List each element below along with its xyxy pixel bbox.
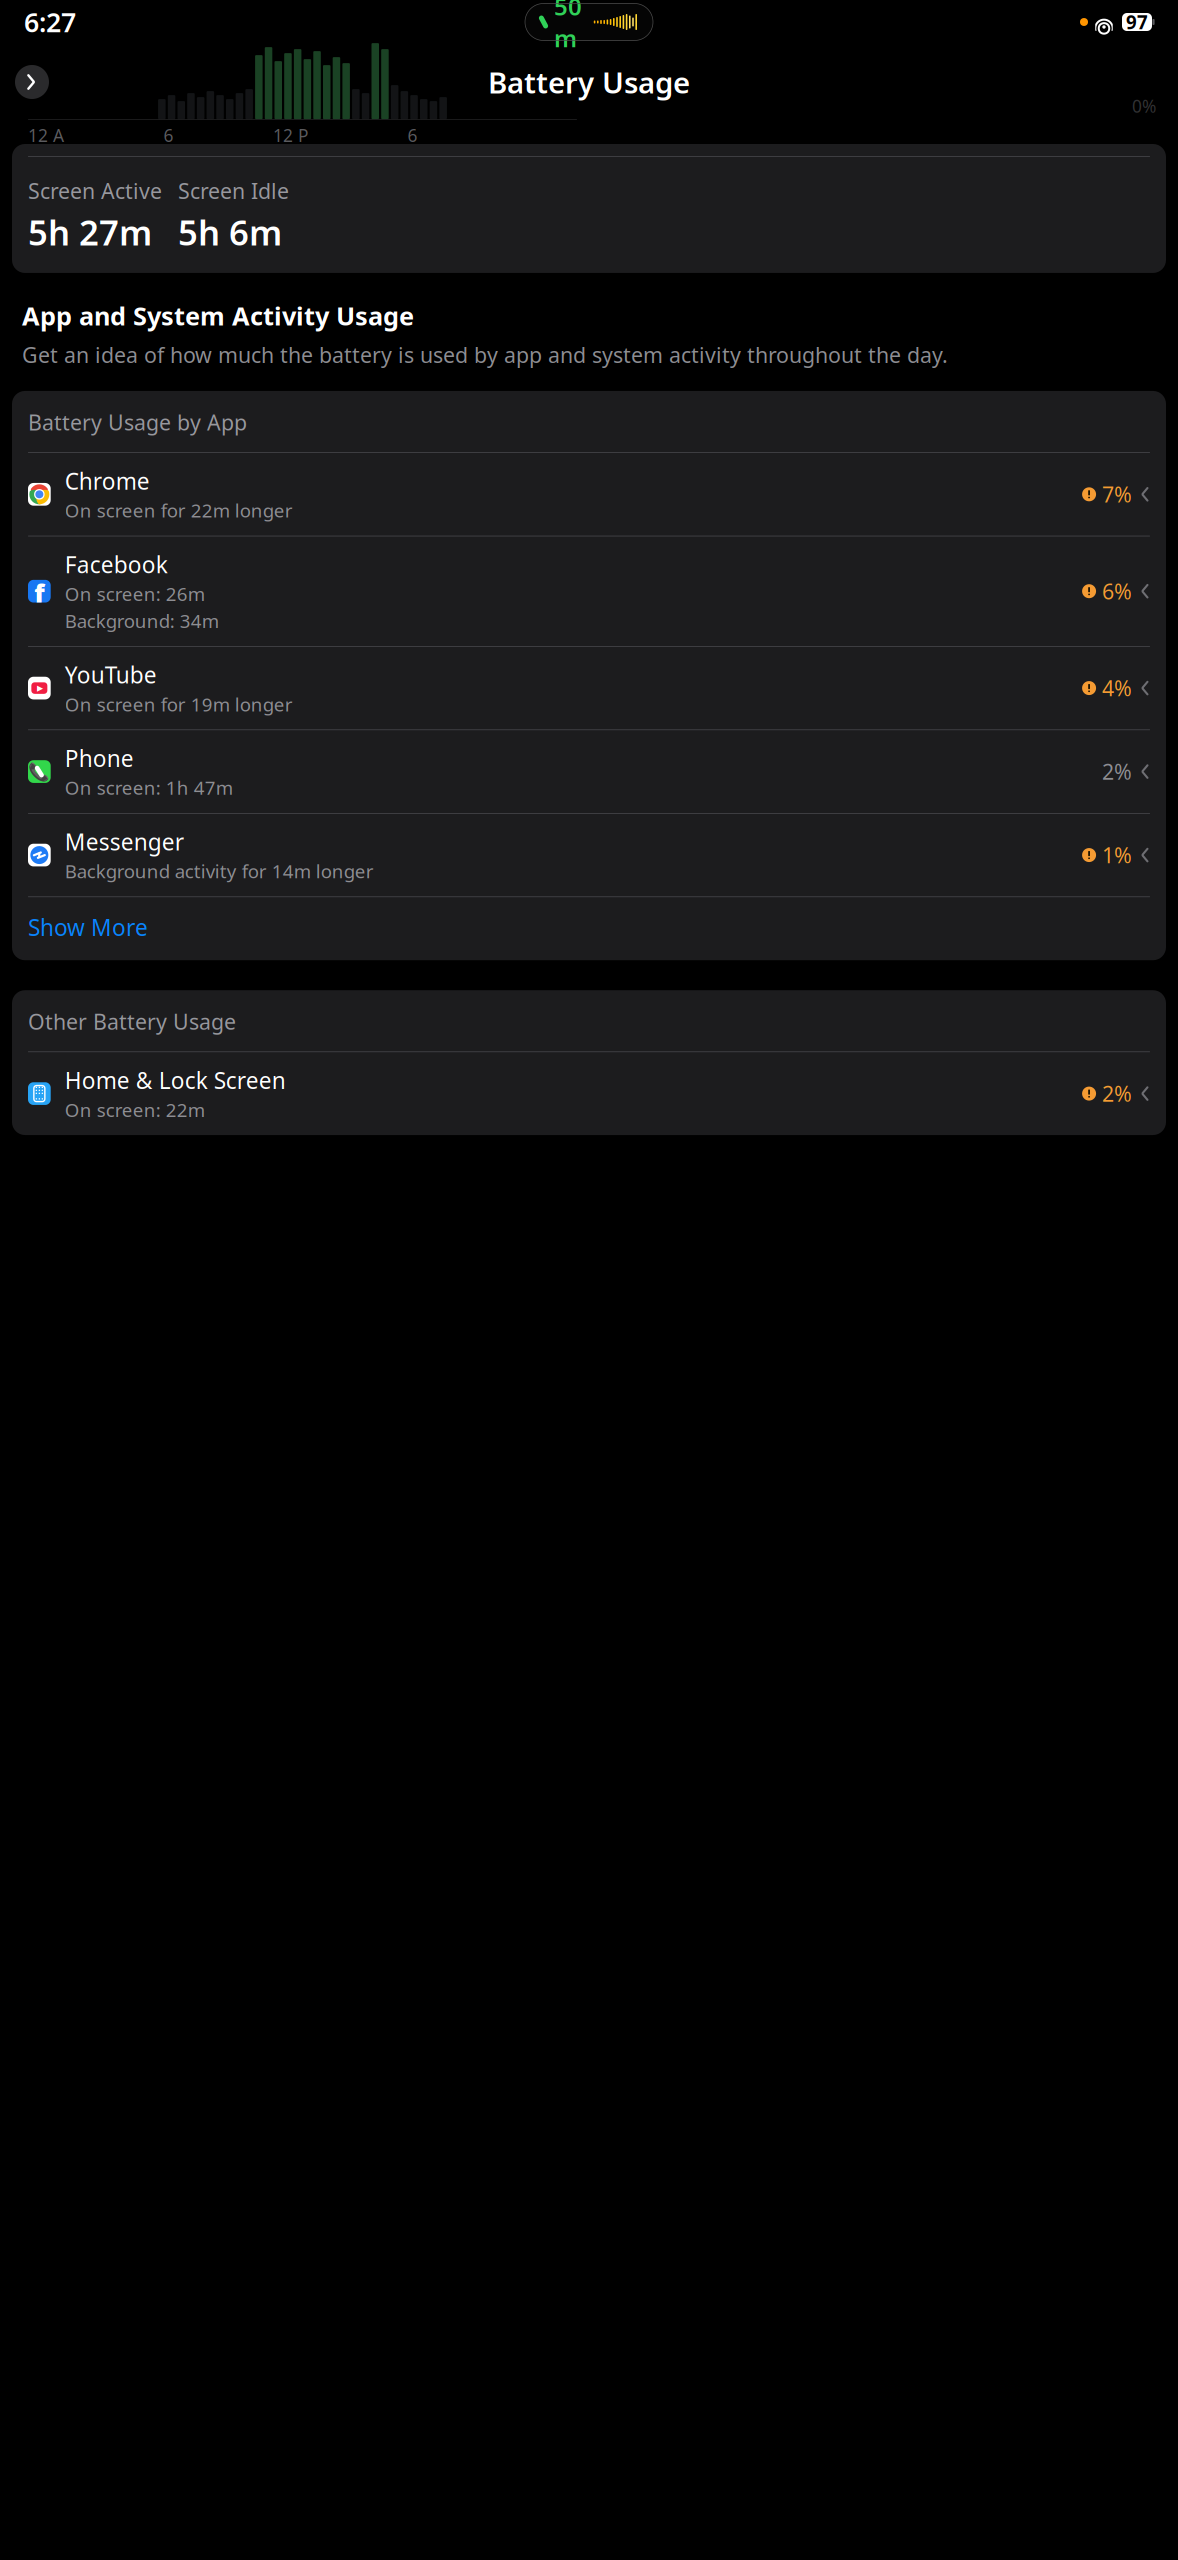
staticText: Battery Usage [488,62,690,101]
staticText: 4% [1102,674,1132,702]
staticText: 6 [163,124,173,147]
staticText: 2% [1102,1079,1132,1108]
staticText: On screen: 22m [65,1097,205,1122]
staticText: Chrome [65,466,150,496]
staticText: ▶ [37,683,43,693]
button[interactable]: Messenger [12,814,1166,896]
staticText: Background: 34m [65,608,219,633]
staticText: Other Battery Usage [28,1007,236,1035]
staticText: Home & Lock Screen [65,1065,286,1095]
staticText: 1% [1102,841,1132,869]
staticText: 50m [554,0,582,54]
staticText: 5h 27m [28,209,152,255]
staticText: Show More [28,912,148,942]
staticText: Battery Usage by App [28,408,247,436]
staticText: 6:27 [24,4,76,40]
button[interactable]: Home & Lock Screen [12,1052,1166,1135]
staticText: 6% [1102,577,1132,605]
staticText: Screen Active [28,177,162,205]
staticText: Phone [65,743,134,773]
staticText: Messenger [65,827,184,857]
staticText: On screen: 26m [65,581,205,606]
staticText: On screen: 1h 47m [65,775,233,800]
staticText: 5h 6m [178,209,282,255]
button[interactable]: 📞 [12,730,1166,813]
staticText: 6 [407,124,417,147]
staticText: f [34,576,44,609]
staticText: Facebook [65,549,168,579]
staticText: On screen for 22m longer [65,498,293,523]
button[interactable]: ▶ [12,647,1166,729]
staticText: 0% [1132,94,1156,117]
staticText: 2% [1102,757,1132,786]
button[interactable]: Show More [12,897,1166,960]
staticText: Screen Idle [178,177,289,205]
staticText: Get an idea of how much the battery is u… [22,341,948,369]
staticText: 12 P [273,124,308,147]
button[interactable]: Back [13,63,51,101]
staticText: 97 [1126,10,1148,34]
staticText: Background activity for 14m longer [65,859,374,883]
staticText: App and System Activity Usage [22,299,414,333]
button[interactable]: f [12,536,1166,646]
staticText: 12 A [28,124,64,147]
button[interactable]: Chrome [12,453,1166,536]
staticText: On screen for 19m longer [65,692,293,716]
staticText: 📞 [28,762,50,781]
staticText: YouTube [65,660,157,690]
staticText: 7% [1102,480,1132,508]
